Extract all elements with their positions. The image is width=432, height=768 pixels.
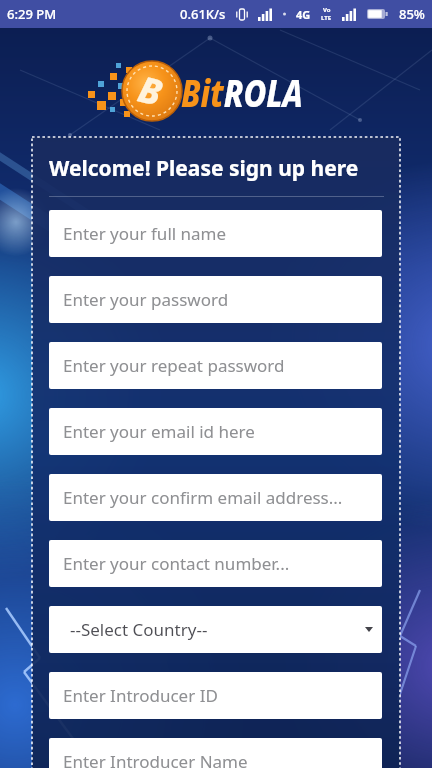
staticText: Enter Introducer Name [63,750,248,768]
staticText: Enter your repeat password [63,354,285,377]
staticText: Enter your email id here [63,420,255,443]
staticText: B [133,64,168,117]
staticText: Enter your full name [63,222,227,245]
staticText: LTE [321,14,332,22]
staticText: Welcome! Please sign up here [49,154,359,183]
staticText: Enter your confirm email address... [63,486,343,509]
staticText: Enter your password [63,288,229,311]
staticText: 85% [399,5,425,23]
staticText: BitROLA [181,66,303,118]
staticText: 4G [296,7,311,22]
staticText: 0.61K/s [180,5,226,23]
staticText: 6:29 PM [7,5,57,23]
staticText: --Select Country-- [70,618,208,641]
staticText: Enter your contact number... [63,552,290,575]
staticText: Enter Introducer ID [63,684,218,707]
staticText: Vo [323,6,331,14]
